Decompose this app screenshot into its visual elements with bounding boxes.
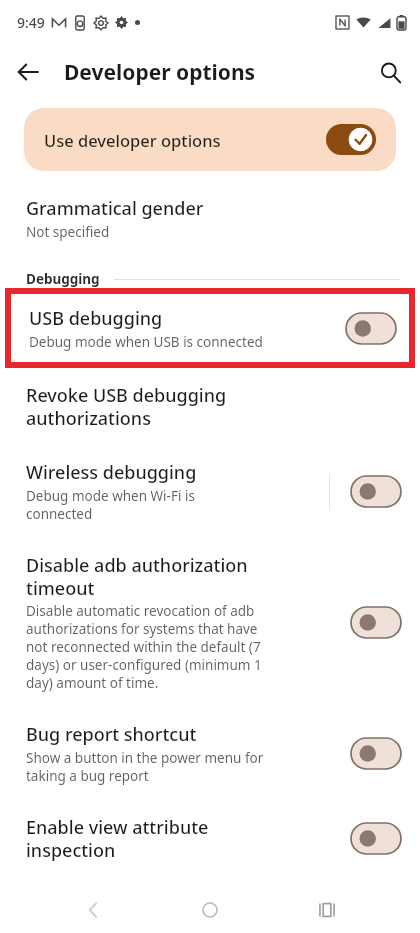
button[interactable]: Back xyxy=(71,887,117,933)
staticText: Show a button in the power menu for taki… xyxy=(26,749,264,785)
staticText: Not specified xyxy=(26,223,110,241)
staticText: Wireless debugging xyxy=(26,460,276,485)
staticText: Debug mode when USB is connected xyxy=(29,333,263,351)
button[interactable]: Search xyxy=(370,52,410,92)
button[interactable]: USB debugging xyxy=(5,288,415,368)
staticText: Enable view attribute inspection xyxy=(26,815,276,862)
staticText: 9:49 xyxy=(17,13,45,32)
button[interactable]: Disable adb authorization timeout xyxy=(0,538,420,707)
button[interactable]: Wireless debugging xyxy=(0,445,420,538)
staticText: Use developer options xyxy=(44,129,221,151)
staticText: Debugging xyxy=(26,270,100,288)
button[interactable]: Recent apps xyxy=(304,887,350,933)
staticText: Disable adb authorization timeout xyxy=(26,553,276,600)
button[interactable]: Bug report shortcut xyxy=(0,707,420,800)
staticText: Developer options xyxy=(64,58,256,87)
button[interactable]: Grammatical gender xyxy=(0,181,420,256)
staticText: Grammatical gender xyxy=(26,196,286,221)
button[interactable]: Enable view attribute inspection xyxy=(0,800,420,877)
staticText: Revoke USB debugging authorizations xyxy=(26,383,276,430)
staticText: Disable automatic revocation of adb auth… xyxy=(26,602,262,692)
button[interactable]: Use developer options xyxy=(24,108,396,171)
button[interactable]: Home xyxy=(187,887,233,933)
staticText: Debug mode when Wi-Fi is connected xyxy=(26,487,195,523)
button[interactable]: Revoke USB debugging authorizations xyxy=(0,368,420,445)
staticText: USB debugging xyxy=(29,306,163,331)
button[interactable]: Back xyxy=(8,52,48,92)
staticText: Bug report shortcut xyxy=(26,722,286,747)
